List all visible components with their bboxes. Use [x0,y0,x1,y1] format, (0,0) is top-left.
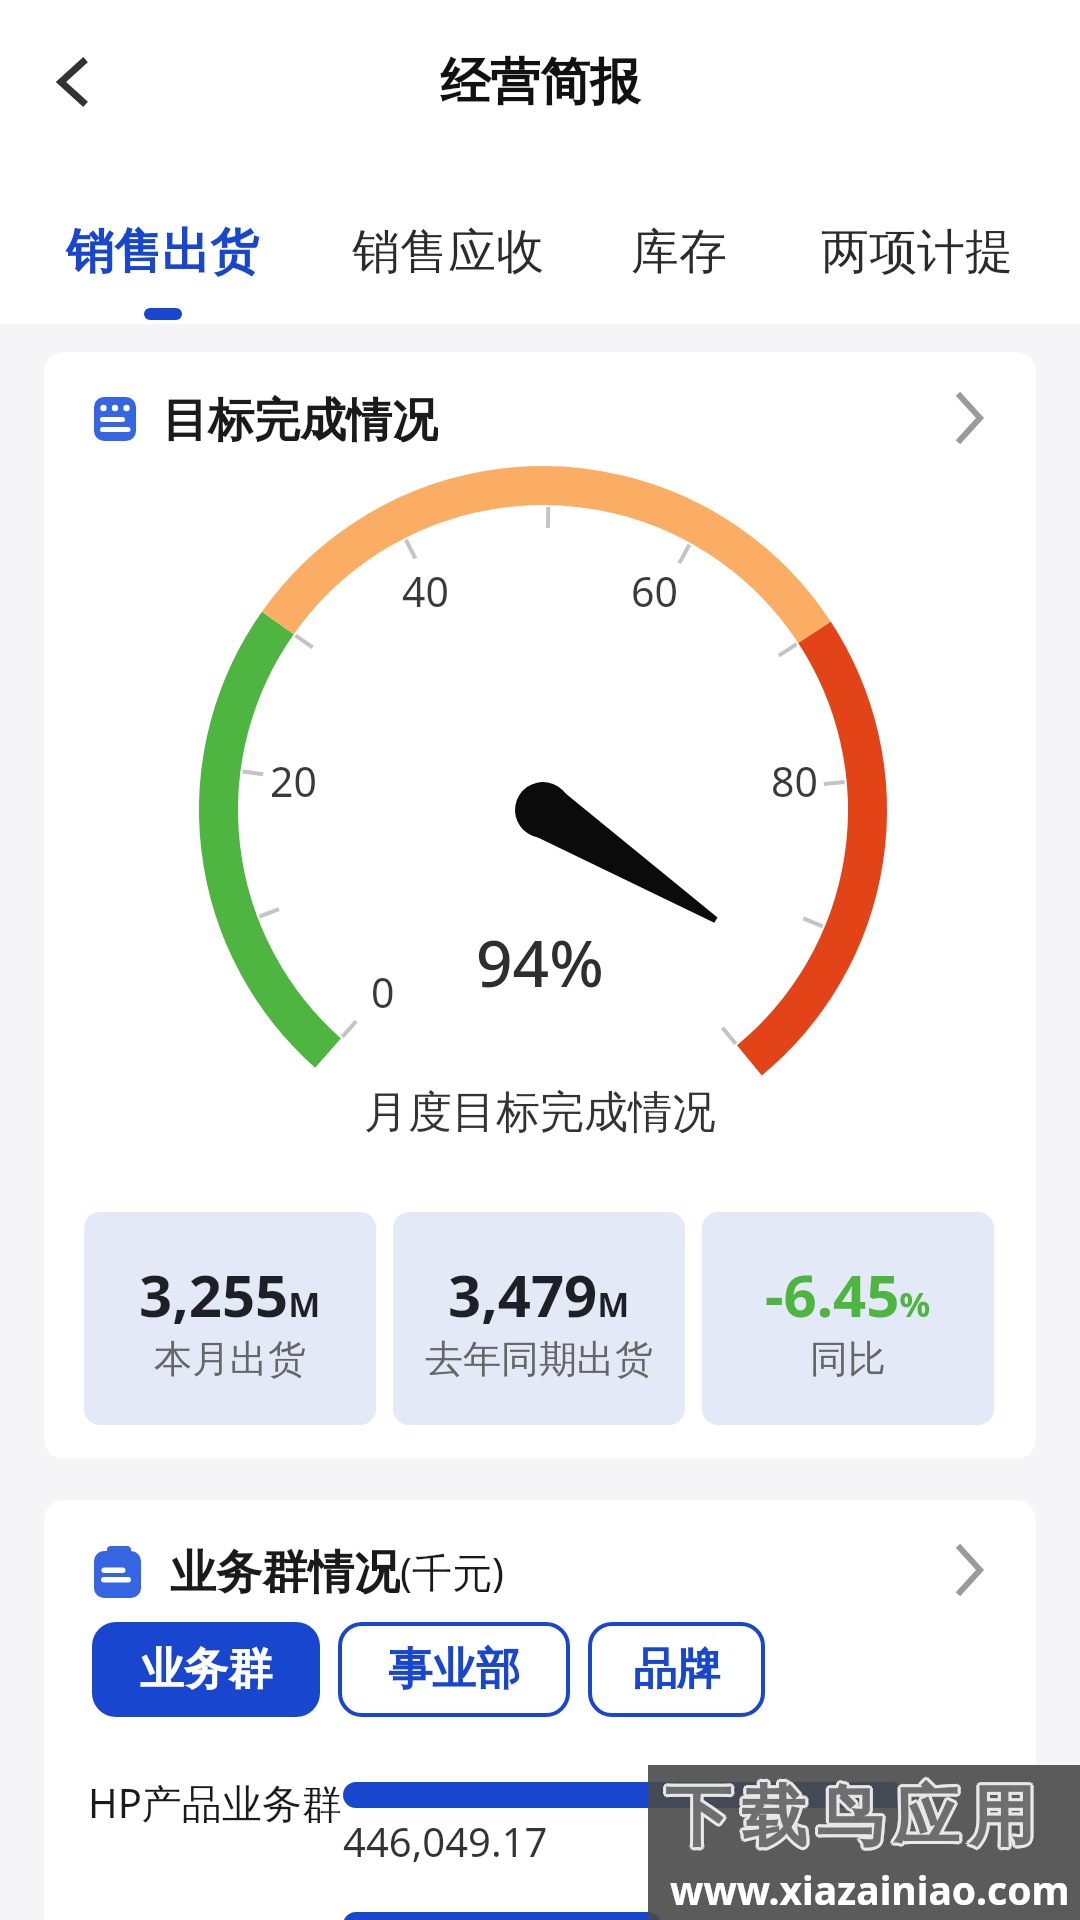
staticText: 月度目标完成情况 [364,1085,716,1140]
button[interactable]: 销售出货 [66,222,258,282]
staticText: 94% [476,919,604,1001]
staticText: 下载鸟应用 [663,1775,1043,1858]
staticText: 两项计提 [821,222,1013,282]
button[interactable] [940,1542,1000,1602]
button[interactable]: 库存 [631,222,727,282]
staticText: 本月出货 [154,1335,306,1383]
staticText: 446,049.17 [343,1814,548,1862]
staticText: 3,479M [448,1255,630,1334]
button[interactable]: 业务群 [92,1622,320,1717]
staticText: 下载鸟应用 [662,1773,1042,1856]
staticText: 同比 [810,1335,886,1383]
button[interactable]: 品牌 [588,1622,765,1717]
staticText: 下载鸟应用 [658,1773,1038,1856]
staticText: 下载鸟应用 [657,1775,1037,1858]
staticText: 下载鸟应用 [660,1775,1040,1858]
staticText: (千元) [400,1544,504,1596]
staticText: 3,255M [139,1255,321,1334]
button[interactable]: 两项计提 [821,222,1013,282]
staticText: 业务群 [140,1642,272,1697]
staticText: 业务群情况 [170,1544,400,1596]
staticText: 事业部 [388,1642,520,1697]
staticText: 下载鸟应用 [660,1778,1040,1861]
staticText: 经营简报 [440,51,640,114]
staticText: HP产品业务群 [88,1775,342,1830]
staticText: 库存 [631,222,727,282]
staticText: 40 [402,563,449,619]
staticText: 品牌 [633,1642,721,1697]
button[interactable] [940,390,1000,450]
button[interactable]: 事业部 [338,1622,570,1717]
staticText: 下载鸟应用 [662,1777,1042,1860]
staticText: 下载鸟应用 [658,1777,1038,1860]
button[interactable]: 销售应收 [352,222,544,282]
staticText: 去年同期出货 [425,1335,653,1383]
staticText: 销售应收 [352,222,544,282]
staticText: 目标完成情况 [162,392,438,444]
button[interactable] [40,45,110,115]
staticText: 下载鸟应用 [660,1772,1040,1855]
staticText: 20 [270,753,317,809]
staticText: -6.45% [765,1255,931,1334]
staticText: 销售出货 [66,222,258,282]
staticText: 60 [631,563,678,619]
staticText: 0 [371,964,395,1020]
staticText: 80 [771,753,818,809]
staticText: www.xiazainiao.com [670,1863,1070,1916]
